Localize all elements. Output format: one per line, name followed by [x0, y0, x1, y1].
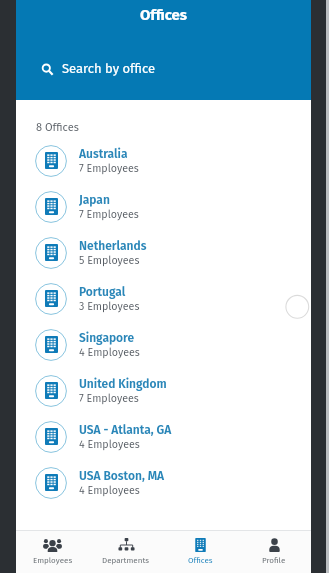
staticText: Profile: [262, 556, 286, 566]
staticText: 4 Employees: [79, 484, 140, 497]
staticText: Search by office: [62, 61, 155, 77]
button[interactable]: USA - Atlanta, GA: [16, 414, 311, 460]
staticText: Employees: [33, 556, 73, 566]
staticText: Japan: [79, 193, 110, 207]
staticText: 8 Offices: [36, 121, 79, 134]
staticText: 7 Employees: [79, 162, 139, 175]
staticText: Departments: [102, 556, 150, 566]
button[interactable]: Offices: [163, 531, 237, 573]
button[interactable]: USA Boston, MA: [16, 460, 311, 506]
button[interactable]: Profile: [237, 531, 311, 573]
staticText: 3 Employees: [79, 300, 140, 313]
staticText: USA Boston, MA: [79, 469, 165, 483]
staticText: 7 Employees: [79, 392, 139, 405]
staticText: 4 Employees: [79, 346, 140, 359]
button[interactable]: Portugal: [16, 276, 311, 322]
button[interactable]: Netherlands: [16, 230, 311, 276]
staticText: Offices: [140, 6, 188, 24]
staticText: Portugal: [79, 285, 126, 299]
staticText: 7 Employees: [79, 208, 139, 221]
button[interactable]: Australia: [16, 138, 311, 184]
button[interactable]: Japan: [16, 184, 311, 230]
button[interactable]: United Kingdom: [16, 368, 311, 414]
staticText: Australia: [79, 147, 128, 161]
staticText: Singapore: [79, 331, 135, 345]
staticText: USA - Atlanta, GA: [79, 423, 172, 437]
button[interactable]: Search by office: [16, 49, 311, 89]
staticText: 5 Employees: [79, 254, 140, 267]
staticText: Netherlands: [79, 239, 147, 253]
staticText: United Kingdom: [79, 377, 167, 391]
staticText: 4 Employees: [79, 438, 140, 451]
button[interactable]: Departments: [89, 531, 163, 573]
button[interactable]: Employees: [16, 531, 89, 573]
button[interactable]: Singapore: [16, 322, 311, 368]
staticText: Offices: [188, 556, 213, 566]
